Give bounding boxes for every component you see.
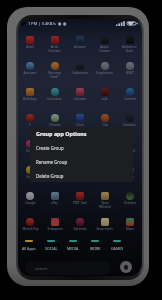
staticText: Chrome — [49, 123, 61, 127]
button[interactable]: Delete Group — [30, 169, 133, 182]
button[interactable]: MEDIA — [62, 239, 84, 251]
staticText: Mobilit Pay — [22, 227, 39, 231]
button[interactable]: Chrome — [42, 105, 67, 127]
button[interactable]: Clock — [67, 105, 92, 127]
button[interactable]: Nonstop Food* — [42, 53, 67, 79]
staticText: Sat'xmas — [73, 227, 87, 231]
staticText: Drive — [26, 149, 34, 153]
staticText: Airtel Xstream — [48, 45, 61, 53]
staticText: Clock — [76, 123, 84, 127]
staticText: Gboard — [124, 149, 135, 153]
button[interactable]: Mobilit Pay — [18, 209, 42, 231]
staticText: cafe — [101, 97, 108, 101]
staticText: Keep — [126, 175, 134, 179]
staticText: Substream — [72, 71, 88, 75]
button[interactable]: Create Group — [30, 141, 133, 155]
button[interactable]: Gmail — [18, 157, 42, 179]
button[interactable]: Google — [18, 183, 42, 205]
staticText: Maps — [126, 227, 134, 231]
staticText: Keep notes — [96, 227, 113, 231]
button[interactable]: Gboard — [117, 131, 142, 153]
staticText: Contacts — [123, 123, 136, 127]
staticText: MEDIA — [67, 246, 79, 251]
staticText: Ambience Dark — [122, 45, 137, 53]
button[interactable]: Airtel Xstream — [42, 27, 67, 53]
button[interactable]: Drive — [18, 131, 42, 153]
button[interactable]: BSNT — [117, 53, 142, 75]
staticText: Nonstop Food* — [48, 71, 61, 79]
button[interactable]: Instagram — [42, 209, 67, 231]
staticText: GAMES — [111, 246, 124, 251]
button[interactable]: PIDT Task — [67, 183, 92, 205]
staticText: search — [35, 266, 48, 271]
button[interactable]: Keep — [117, 157, 142, 179]
staticText: Google — [25, 201, 36, 205]
button[interactable]: WORK — [84, 239, 106, 251]
button[interactable]: Files — [67, 131, 92, 153]
button[interactable]: Clip — [92, 105, 117, 127]
staticText: Camera — [124, 97, 136, 101]
button[interactable]: Home — [120, 261, 132, 273]
button[interactable]: Birthdays — [18, 79, 42, 101]
button[interactable]: GAMES — [106, 239, 128, 251]
button[interactable]: Ambience Dark — [117, 27, 142, 53]
button[interactable]: Duo — [42, 131, 67, 153]
staticText: October — [124, 201, 136, 205]
staticText: Go — [52, 175, 57, 179]
staticText: Ryan Whizkid — [99, 201, 111, 209]
button[interactable]: Go — [42, 157, 67, 179]
button[interactable]: C — [18, 105, 42, 127]
staticText: xPay — [51, 201, 58, 205]
button[interactable]: All Apps — [18, 239, 40, 251]
button[interactable]: Calculator — [42, 79, 67, 101]
button[interactable]: Calendar — [67, 79, 92, 101]
staticText: BSNT — [126, 71, 134, 75]
button[interactable]: October — [117, 183, 142, 205]
button[interactable]: Keep notes — [92, 209, 117, 231]
button[interactable]: Assistant — [18, 53, 42, 75]
staticText: All Apps — [22, 246, 36, 251]
staticText: Engelmann — [96, 71, 113, 75]
button[interactable]: Camera — [117, 79, 142, 101]
staticText: Appro Creator — [99, 45, 110, 53]
button[interactable]: Ryan Whizkid — [92, 183, 117, 209]
button[interactable]: Rename Group — [30, 155, 133, 169]
staticText: Instagram — [47, 227, 63, 231]
button[interactable]: Maps — [117, 209, 142, 231]
button[interactable]: Engelmann — [92, 53, 117, 75]
staticText: PIDT Task — [73, 201, 87, 205]
staticText: Amazon — [74, 45, 86, 49]
button[interactable]: search — [25, 261, 111, 275]
button[interactable]: Contacts — [117, 105, 142, 127]
staticText: Gmail — [26, 175, 35, 179]
staticText: Create Group — [36, 145, 64, 151]
staticText: Calendar — [73, 97, 87, 101]
staticText: Birthdays — [23, 97, 37, 101]
staticText: Group app Options — [36, 130, 87, 137]
staticText: Duo — [51, 149, 58, 153]
staticText: Calculator — [47, 97, 62, 101]
button[interactable]: Appro Creator — [92, 27, 117, 53]
button[interactable]: Sat'xmas — [67, 209, 92, 231]
staticText: Rename Group — [36, 159, 68, 165]
button[interactable]: Airtel — [18, 27, 42, 49]
staticText: C — [29, 123, 31, 127]
staticText: Clip — [102, 123, 108, 127]
button[interactable]: Amazon — [67, 27, 92, 49]
staticText: SOCIAL — [45, 246, 58, 251]
staticText: WORK — [90, 246, 101, 251]
staticText: Airtel — [26, 45, 34, 49]
button[interactable]: cafe — [92, 79, 117, 101]
button[interactable]: Substream — [67, 53, 92, 75]
button[interactable]: SOCIAL — [40, 239, 62, 251]
staticText: Delete Group — [36, 173, 64, 179]
button[interactable]: xPay — [42, 183, 67, 205]
staticText: 1 PM | 0.4KB/s — [28, 21, 56, 26]
